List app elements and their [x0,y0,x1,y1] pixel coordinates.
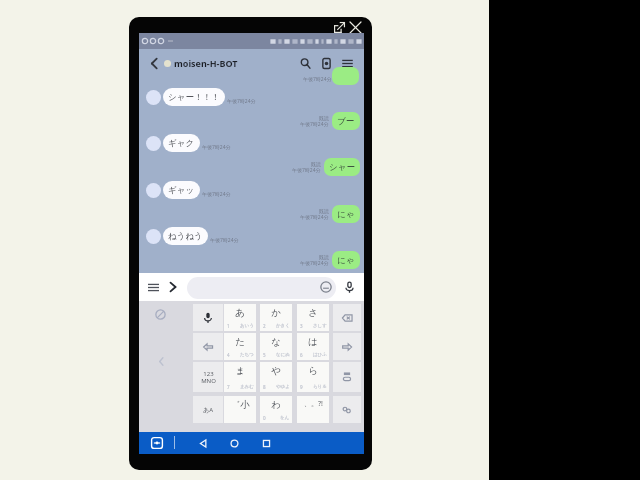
button[interactable]: ねうねう [163,227,208,245]
staticText: 既読 [319,115,329,121]
staticText: 、。?! [304,399,323,409]
button[interactable]: ブー [332,112,360,130]
staticText: た [235,336,245,348]
staticText: 既読 [319,208,329,214]
staticText: ブー [337,116,355,127]
staticText: なにぬ [276,352,290,358]
button[interactable]: Sticker [318,279,334,295]
button[interactable]: か [260,304,292,331]
button[interactable]: 、。?! [297,396,329,423]
button[interactable] [187,277,336,299]
button[interactable]: Search [297,55,314,72]
staticText: 2 [263,323,266,329]
staticText: や [271,365,281,377]
button[interactable]: ギャッ [163,181,200,199]
button[interactable]: や [260,362,292,392]
button[interactable]: ギャク [163,134,200,152]
button[interactable]: Voice input [193,304,223,331]
button[interactable]: More options [145,279,161,295]
button[interactable]: Home [223,432,245,454]
staticText: 9 [300,384,303,390]
button[interactable]: Letters [193,396,223,423]
staticText: ギャッ [168,185,195,196]
staticText: 8 [263,384,266,390]
button[interactable]: Previous page [153,353,169,369]
button[interactable]: ら [297,362,329,392]
button[interactable]: Left [193,333,223,360]
staticText: あ [235,307,245,319]
staticText: ゛小 [230,399,250,411]
staticText: あA [203,406,213,414]
staticText: ねうねう [168,231,203,242]
button[interactable]: Voice message [341,279,357,295]
button[interactable]: Backspace [333,304,361,331]
staticText: まみむ [240,384,254,390]
staticText: 午後7時24分 [303,76,332,83]
button[interactable]: な [260,333,292,360]
button[interactable]: ま [224,362,256,392]
staticText: 3 [300,323,303,329]
staticText: か [271,307,281,319]
staticText: 123 MNO [201,370,216,385]
staticText: 5 [263,352,266,358]
staticText: あいう [240,323,254,329]
button[interactable]: ゛小 [224,396,256,423]
staticText: 既読 [311,161,321,167]
staticText: 午後7時24分 [227,98,256,105]
staticText: 午後7時24分 [292,167,321,174]
button[interactable]: Expand [165,279,181,295]
staticText: な [271,336,281,348]
staticText: さ [308,307,318,319]
staticText: 既読 [319,254,329,260]
staticText: シャー [329,162,355,173]
staticText: かきく [276,323,290,329]
staticText: 6 [300,352,303,358]
staticText: にゃ [337,255,355,266]
staticText: をん [280,415,290,421]
staticText: 午後7時24分 [210,237,239,244]
staticText: 午後7時24分 [300,214,329,221]
staticText: シャー！！！ [168,92,220,103]
staticText: ギャク [168,138,195,149]
staticText: は [308,336,318,348]
staticText: にゃ [337,209,355,220]
button[interactable]: にゃ [332,205,360,223]
button[interactable]: た [224,333,256,360]
button[interactable]: Back [192,432,214,454]
staticText: わ [271,399,281,411]
staticText: ら [308,365,318,377]
staticText: 午後7時24分 [300,121,329,128]
button[interactable]: Emoji [333,396,361,423]
staticText: 午後7時24分 [202,191,231,198]
staticText: 午後7時24分 [300,260,329,267]
staticText: 午後7時24分 [202,144,231,151]
button[interactable]: Numbers [193,362,223,392]
button[interactable]: Right [333,333,361,360]
button[interactable]: シャー [324,158,360,176]
button[interactable]: Recents [255,432,277,454]
button[interactable]: Menu [339,55,356,72]
button[interactable]: Keyboard settings [152,306,168,322]
staticText: moisen-H-BOT [174,57,238,69]
button[interactable]: Close [348,20,363,35]
button[interactable]: Call [318,55,335,72]
staticText: 7 [227,384,230,390]
staticText: 0 [263,415,266,421]
staticText: 1 [227,323,230,329]
button[interactable]: あ [224,304,256,331]
staticText: らりる [313,384,327,390]
staticText: やゆよ [276,384,290,390]
button[interactable]: わ [260,396,292,423]
staticText: 4 [227,352,230,358]
staticText: たちつ [240,352,254,358]
button[interactable]: Back [146,55,162,71]
staticText: ま [235,365,245,377]
button[interactable]: にゃ [332,251,360,269]
button[interactable]: さ [297,304,329,331]
button[interactable]: Open in new window [332,20,347,35]
button[interactable]: は [297,333,329,360]
staticText: さしす [313,323,327,329]
button[interactable]: Switch keyboard [149,435,164,450]
button[interactable]: シャー！！！ [163,88,225,106]
button[interactable]: Enter [333,362,361,392]
